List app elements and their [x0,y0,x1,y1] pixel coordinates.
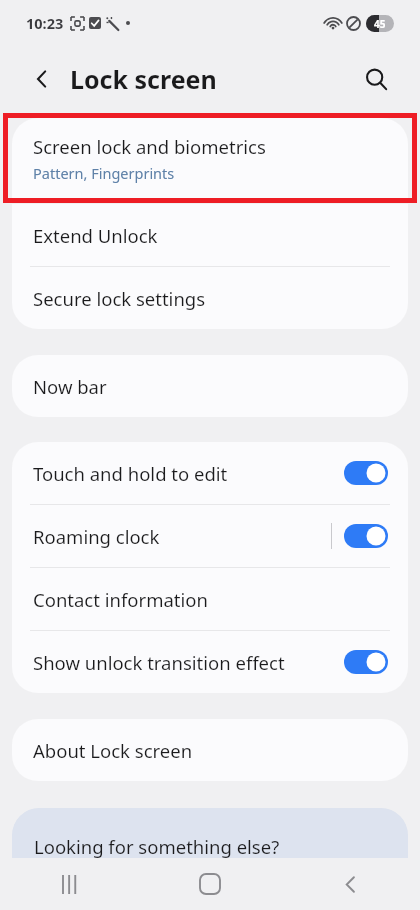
staticText: Contact information [33,587,208,612]
button[interactable]: Extend Unlock [12,204,408,266]
staticText: Now bar [33,374,107,399]
staticText: Show unlock transition effect [33,650,285,675]
staticText: Lock screen [70,62,217,96]
staticText: About Lock screen [33,738,193,763]
staticText: Extend Unlock [33,223,158,248]
button[interactable]: Show unlock transition effect [12,631,408,693]
button[interactable]: Home [140,858,280,910]
staticText: Touch and hold to edit [33,461,228,486]
staticText: Pattern, Fingerprints [33,163,175,183]
button[interactable]: Screen lock and biometrics [12,118,408,198]
button[interactable]: Recent apps [0,858,140,910]
staticText: Secure lock settings [33,286,206,311]
button[interactable]: About Lock screen [12,719,408,781]
button[interactable]: Roaming clock [12,505,408,567]
button[interactable]: Now bar [12,355,408,417]
button[interactable]: Contact information [12,568,408,630]
staticText: Roaming clock [33,524,160,549]
button[interactable]: Search [356,59,396,99]
button[interactable]: Back [24,61,60,97]
button[interactable]: Touch and hold to edit [12,442,408,504]
staticText: 45 [374,17,386,31]
staticText: Screen lock and biometrics [33,134,266,159]
button[interactable]: Secure lock settings [12,267,408,329]
button[interactable]: Back [280,858,420,910]
button[interactable]: Looking for something else? [12,808,408,884]
staticText: 10:23 [26,13,64,33]
staticText: Looking for something else? [34,834,280,859]
